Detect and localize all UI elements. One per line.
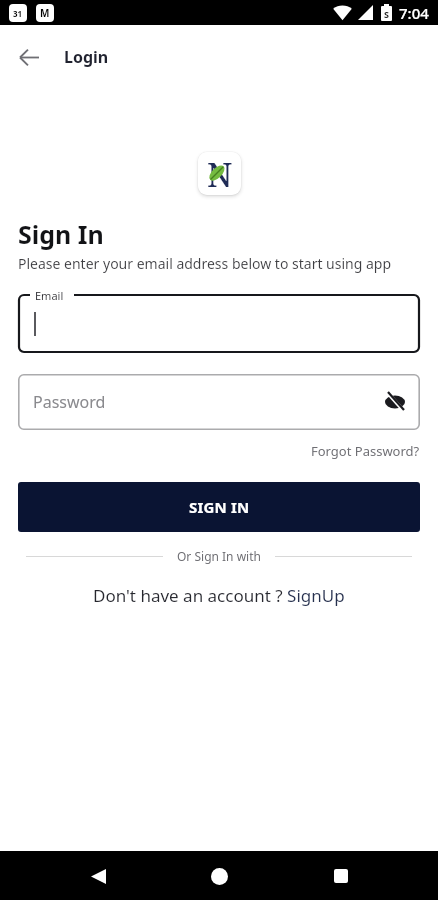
staticText: Password [33, 391, 106, 413]
staticText: 31 [13, 8, 23, 19]
staticText: SIGN IN [189, 497, 250, 517]
staticText: Login [64, 46, 109, 68]
button[interactable] [20, 48, 39, 67]
staticText: Email [35, 288, 64, 303]
staticText: S [384, 8, 389, 20]
button[interactable] [74, 852, 122, 900]
button[interactable]: Forgot Password? [311, 442, 420, 460]
staticText: M [40, 6, 50, 20]
staticText: Sign In [18, 217, 104, 251]
button[interactable]: SIGN IN [18, 482, 420, 532]
button[interactable]: Don't have an account ? SignUp [93, 584, 345, 607]
staticText: Please enter your email address below to… [18, 254, 392, 273]
staticText: N [207, 152, 233, 195]
button[interactable] [195, 852, 243, 900]
button[interactable]: Email [18, 288, 420, 353]
staticText: Or Sign In with [177, 548, 261, 564]
button[interactable]: Password [18, 374, 420, 430]
button[interactable] [317, 852, 365, 900]
staticText: 7:04 [399, 3, 429, 23]
